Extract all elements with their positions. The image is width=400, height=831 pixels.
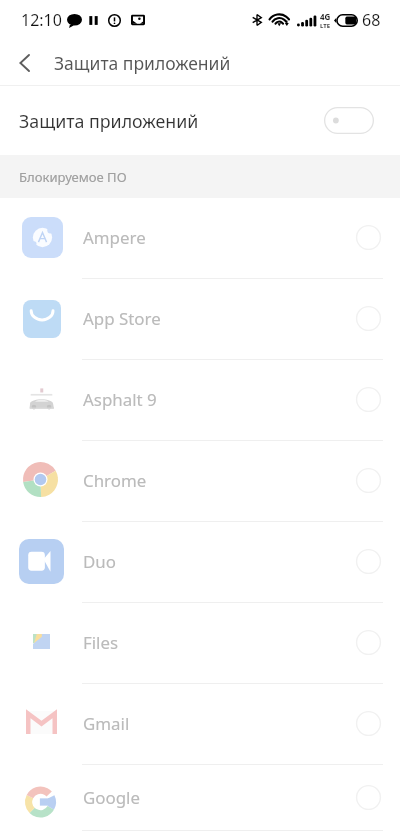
staticText: Asphalt 9 [83, 388, 157, 411]
staticText: Files [83, 631, 119, 654]
staticText: Блокируемое ПО [19, 168, 127, 186]
staticText: App Store [83, 307, 161, 330]
staticText: LTE [320, 22, 331, 30]
staticText: 12:10 [21, 9, 62, 31]
button[interactable]: App Store [0, 279, 400, 360]
staticText: Gmail [83, 712, 130, 735]
button[interactable]: Files [0, 603, 400, 684]
button[interactable]: Gmail [0, 684, 400, 765]
staticText: Chrome [83, 469, 147, 492]
button[interactable]: Защита приложений [0, 86, 400, 155]
staticText: 4G [320, 11, 331, 22]
button[interactable]: Duo [0, 522, 400, 603]
staticText: Защита приложений [54, 51, 231, 75]
button[interactable]: Chrome [0, 441, 400, 522]
button[interactable]: Back [0, 40, 50, 86]
staticText: 68 [362, 9, 381, 31]
staticText: Google [83, 786, 141, 809]
button[interactable]: Ampere [0, 198, 400, 279]
staticText: Duo [83, 550, 116, 573]
button[interactable]: Asphalt 9 [0, 360, 400, 441]
staticText: Защита приложений [19, 109, 199, 133]
button[interactable]: Google [0, 765, 400, 831]
staticText: Ampere [83, 226, 146, 249]
